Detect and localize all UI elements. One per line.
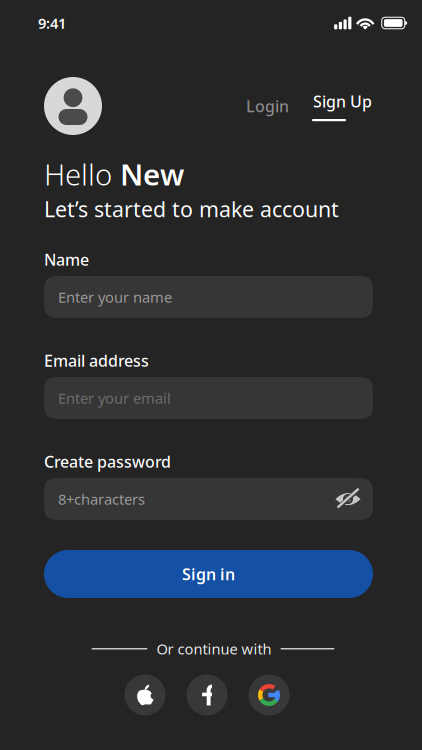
staticText: Sign Up (313, 91, 372, 112)
staticText: Hello New (44, 154, 184, 193)
button[interactable]: Enter your email (44, 377, 373, 419)
staticText: Name (44, 249, 89, 270)
staticText: Or continue with (156, 639, 271, 658)
button[interactable]: Enter your name (44, 276, 373, 318)
staticText: Sign in (182, 563, 235, 585)
button[interactable]: Continue with Apple (124, 674, 165, 715)
staticText: 9:41 (38, 13, 66, 33)
staticText: 8+characters (58, 489, 145, 509)
button[interactable]: Continue with Google (248, 674, 289, 715)
staticText: Create password (44, 451, 171, 472)
button[interactable]: 8+characters (44, 478, 373, 520)
staticText: Email address (44, 350, 149, 371)
button[interactable]: Sign in (44, 550, 373, 598)
staticText: Login (246, 95, 289, 117)
button[interactable]: Continue with Facebook (186, 674, 227, 715)
button[interactable]: Login (246, 87, 289, 125)
staticText: Let’s started to make account (44, 195, 339, 223)
staticText: Enter your name (58, 287, 172, 307)
staticText: Enter your email (58, 388, 171, 408)
button[interactable]: Sign Up (312, 87, 373, 125)
